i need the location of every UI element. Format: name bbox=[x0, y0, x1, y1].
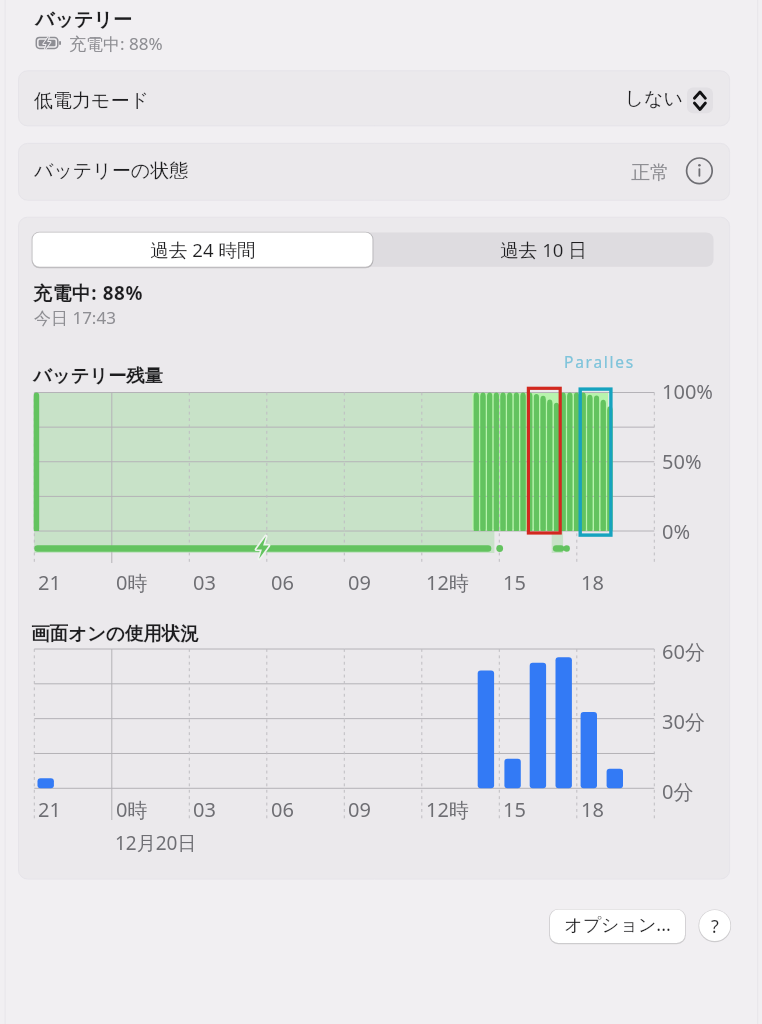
staticText: ? bbox=[699, 914, 731, 939]
staticText: Paralles bbox=[564, 351, 636, 372]
staticText: 0% bbox=[662, 518, 691, 545]
staticText: しない bbox=[383, 87, 683, 111]
staticText: 過去 24 時間 bbox=[33, 237, 373, 262]
staticText: 15 bbox=[503, 796, 526, 823]
staticText: 09 bbox=[348, 569, 371, 596]
button[interactable] bbox=[19, 71, 731, 127]
staticText: 21 bbox=[38, 796, 61, 823]
staticText: 18 bbox=[581, 796, 604, 823]
button[interactable]: Change low power mode bbox=[687, 88, 713, 114]
button[interactable] bbox=[19, 144, 731, 201]
staticText: 12時 bbox=[426, 569, 469, 596]
staticText: 09 bbox=[348, 796, 371, 823]
staticText: バッテリーの状態 bbox=[34, 159, 189, 183]
staticText: 50% bbox=[662, 448, 702, 475]
staticText: 15 bbox=[503, 569, 526, 596]
staticText: 03 bbox=[193, 569, 216, 596]
staticText: バッテリー bbox=[35, 8, 132, 32]
staticText: 06 bbox=[271, 796, 294, 823]
staticText: 正常 bbox=[369, 161, 669, 185]
staticText: 今日 17:43 bbox=[34, 306, 116, 329]
staticText: 18 bbox=[581, 569, 604, 596]
staticText: 60分 bbox=[662, 638, 705, 665]
staticText: 低電力モード bbox=[34, 89, 149, 113]
staticText: 充電中: 88% bbox=[69, 32, 163, 55]
staticText: 過去 10 日 bbox=[373, 237, 714, 262]
staticText: バッテリー残量 bbox=[33, 364, 163, 387]
button[interactable] bbox=[33, 233, 373, 267]
staticText: 12月20日 bbox=[115, 830, 197, 856]
button[interactable] bbox=[550, 910, 685, 944]
staticText: 30分 bbox=[662, 708, 705, 735]
staticText: 充電中: 88% bbox=[33, 280, 143, 306]
button[interactable] bbox=[373, 233, 714, 267]
staticText: 06 bbox=[271, 569, 294, 596]
staticText: オプション... bbox=[550, 912, 685, 937]
staticText: 12時 bbox=[426, 796, 469, 823]
button[interactable]: Help bbox=[699, 910, 731, 941]
staticText: 03 bbox=[193, 796, 216, 823]
staticText: 画面オンの使用状況 bbox=[31, 622, 199, 645]
staticText: 0時 bbox=[116, 569, 148, 596]
staticText: 0分 bbox=[662, 778, 694, 805]
button[interactable]: Battery health information bbox=[687, 158, 713, 184]
staticText: 21 bbox=[38, 569, 61, 596]
staticText: 100% bbox=[662, 378, 713, 405]
staticText: 0時 bbox=[116, 796, 148, 823]
